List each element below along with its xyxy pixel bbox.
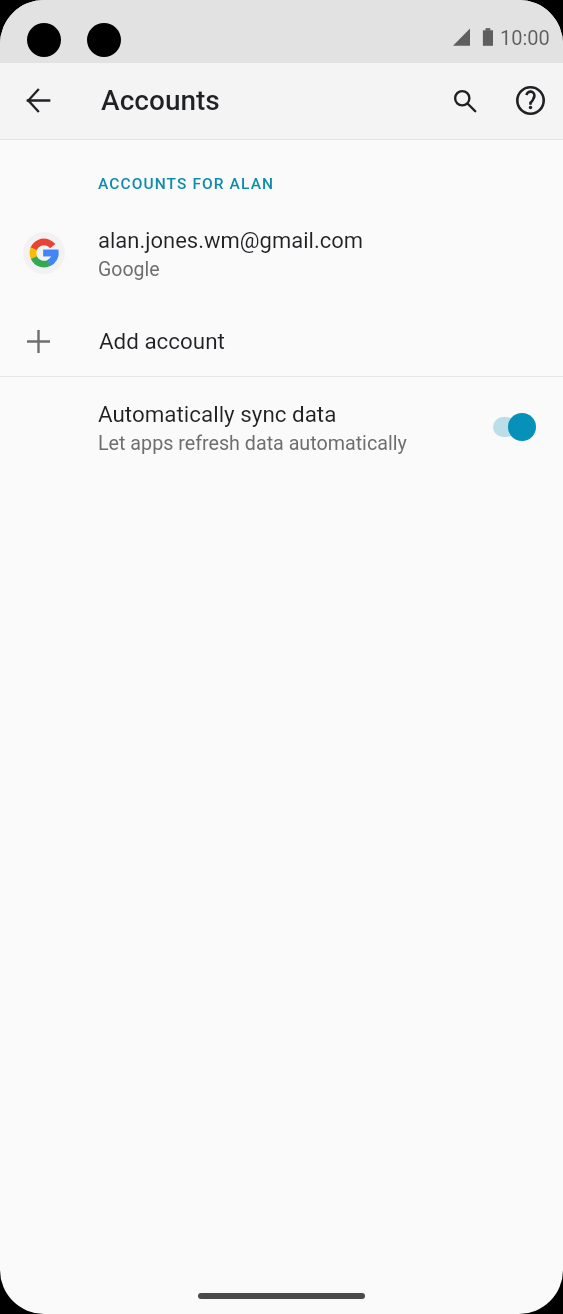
button[interactable]: Back xyxy=(14,76,62,124)
button[interactable]: Add account xyxy=(0,307,563,375)
button[interactable]: Search xyxy=(440,76,488,124)
staticText: alan.jones.wm@gmail.com xyxy=(98,228,364,254)
staticText: 10:00 xyxy=(500,26,550,49)
staticText: Google xyxy=(98,258,160,281)
staticText: Accounts xyxy=(101,84,220,117)
staticText: Automatically sync data xyxy=(98,401,337,427)
button[interactable]: Automatically sync data xyxy=(0,377,563,473)
staticText: Let apps refresh data automatically xyxy=(98,432,407,455)
button[interactable]: Help xyxy=(506,76,554,124)
staticText: Add account xyxy=(99,328,225,354)
button[interactable]: alan.jones.wm@gmail.com xyxy=(0,211,563,296)
staticText: ACCOUNTS FOR ALAN xyxy=(98,175,275,193)
